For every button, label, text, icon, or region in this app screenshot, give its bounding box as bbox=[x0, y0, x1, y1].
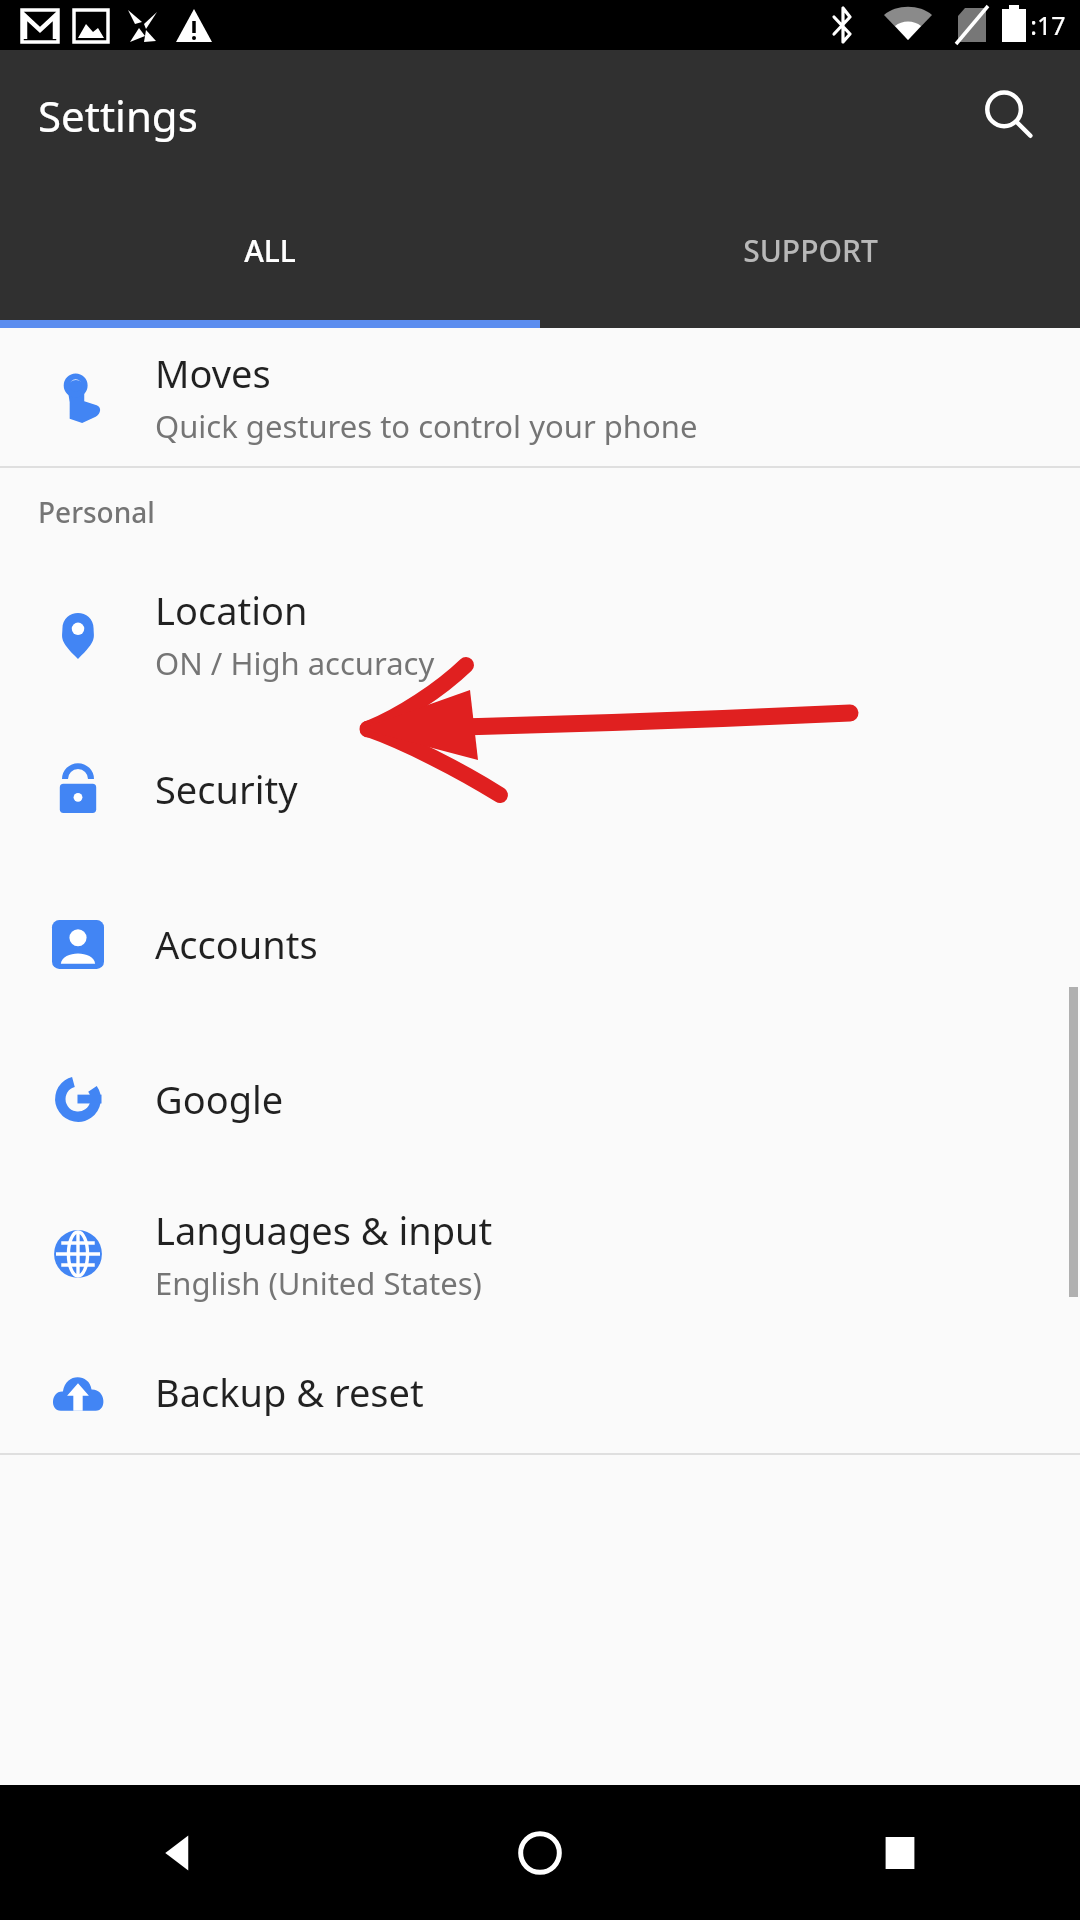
button[interactable]: Google bbox=[0, 1021, 1080, 1176]
button[interactable]: Home bbox=[360, 1785, 720, 1920]
staticText: Moves bbox=[155, 347, 271, 399]
staticText: Languages & input bbox=[155, 1204, 493, 1256]
staticText: ALL bbox=[244, 230, 296, 271]
staticText: Personal bbox=[38, 493, 155, 531]
button[interactable]: Languages & input bbox=[0, 1176, 1080, 1331]
button[interactable]: Security bbox=[0, 711, 1080, 866]
staticText: Quick gestures to control your phone bbox=[155, 405, 698, 447]
staticText: Accounts bbox=[155, 918, 318, 970]
button[interactable]: ALL bbox=[0, 180, 540, 320]
button[interactable]: Recent apps bbox=[720, 1785, 1080, 1920]
button[interactable]: Search bbox=[960, 67, 1056, 163]
button[interactable]: Backup & reset bbox=[0, 1331, 1080, 1453]
button[interactable]: Back bbox=[0, 1785, 360, 1920]
staticText: Backup & reset bbox=[155, 1366, 424, 1418]
button[interactable]: Accounts bbox=[0, 866, 1080, 1021]
staticText: SUPPORT bbox=[743, 230, 878, 271]
button[interactable]: Location bbox=[0, 556, 1080, 711]
staticText: 1:17 bbox=[1016, 8, 1066, 42]
staticText: Google bbox=[155, 1073, 284, 1125]
staticText: Settings bbox=[38, 87, 198, 144]
staticText: Security bbox=[155, 763, 298, 815]
button[interactable]: Moves bbox=[0, 328, 1080, 466]
button[interactable]: SUPPORT bbox=[540, 180, 1080, 320]
staticText: ON / High accuracy bbox=[155, 642, 435, 684]
staticText: English (United States) bbox=[155, 1262, 482, 1304]
staticText: Location bbox=[155, 584, 308, 636]
